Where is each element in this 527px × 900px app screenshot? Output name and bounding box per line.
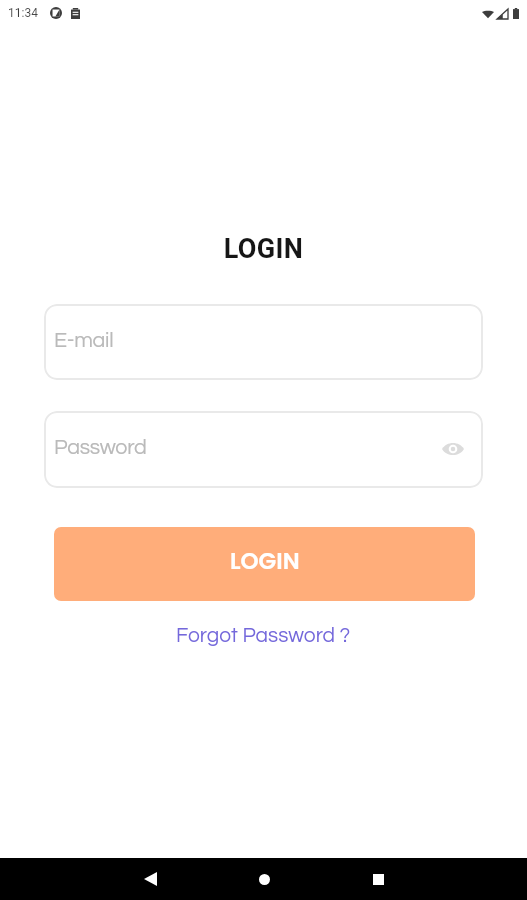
button[interactable]: Home bbox=[207, 858, 321, 900]
staticText: Password bbox=[54, 436, 147, 458]
button[interactable]: Show password bbox=[438, 434, 468, 464]
button[interactable]: Recent apps bbox=[321, 858, 435, 900]
button[interactable]: E-mail bbox=[44, 304, 483, 380]
staticText: LOGIN bbox=[0, 233, 527, 265]
staticText: E-mail bbox=[54, 329, 114, 351]
button[interactable]: Forgot Password ? bbox=[168, 621, 359, 651]
staticText: 11:34 bbox=[8, 6, 38, 20]
staticText: LOGIN bbox=[230, 545, 300, 577]
button[interactable]: Back bbox=[93, 858, 207, 900]
button[interactable]: Password bbox=[44, 411, 483, 488]
button[interactable]: LOGIN bbox=[54, 527, 475, 601]
